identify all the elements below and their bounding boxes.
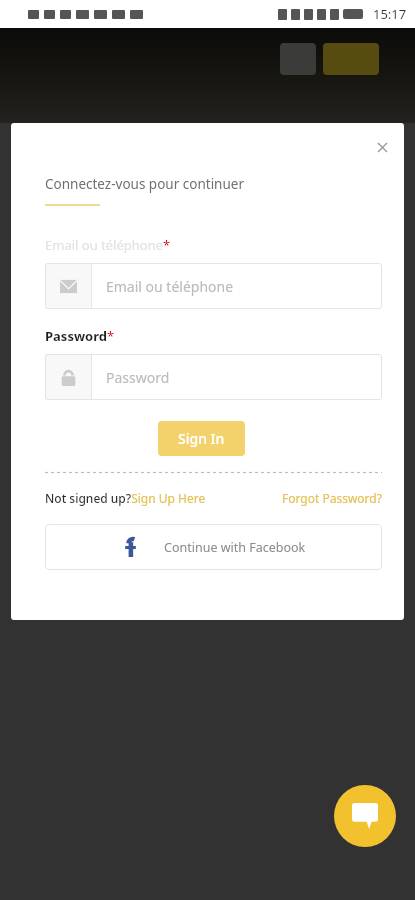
button[interactable]: Close <box>370 135 394 159</box>
staticText: Not signed up?Sign Up Here <box>45 490 206 506</box>
staticText: Sign In <box>178 429 225 448</box>
staticText: Email ou téléphone* <box>45 236 171 254</box>
button[interactable]: Language <box>323 43 379 75</box>
button[interactable]: Continue with Facebook <box>45 524 382 570</box>
staticText: Password* <box>45 327 115 345</box>
staticText: Forgot Password? <box>282 490 382 506</box>
button[interactable]: Not signed up?Sign Up Here <box>45 490 274 506</box>
button[interactable]: Chat <box>334 785 396 847</box>
button[interactable]: Forgot Password? <box>282 490 382 506</box>
staticText: Email ou téléphone <box>106 277 234 296</box>
button[interactable]: Search <box>280 43 316 75</box>
button[interactable]: Sign In <box>158 421 245 456</box>
button[interactable]: Password <box>45 354 382 400</box>
button[interactable]: Email ou téléphone <box>45 263 382 309</box>
staticText: Continue with Facebook <box>164 539 306 556</box>
staticText: 15:17 <box>373 5 407 23</box>
staticText: Password <box>106 368 170 387</box>
staticText: Connectez-vous pour continuer <box>45 175 244 193</box>
